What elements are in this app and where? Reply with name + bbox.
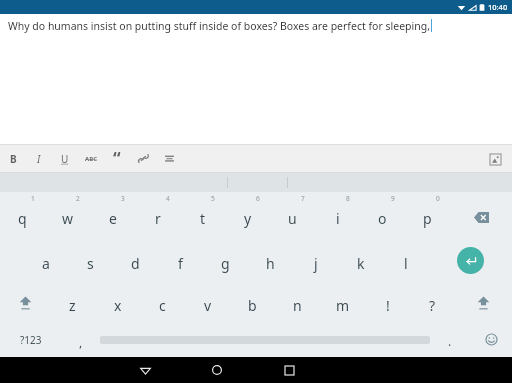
button[interactable]: Italic: [26, 144, 52, 173]
staticText: v: [204, 296, 212, 315]
staticText: “: [113, 147, 121, 170]
staticText: 0: [436, 194, 440, 203]
button[interactable]: Shift: [0, 282, 50, 322]
staticText: ?123: [20, 333, 42, 347]
button[interactable]: Home: [200, 357, 234, 383]
button[interactable]: d: [113, 238, 158, 282]
button[interactable]: b: [230, 282, 275, 322]
button[interactable]: h: [248, 238, 293, 282]
staticText: 10:40: [488, 2, 508, 12]
button[interactable]: s: [68, 238, 113, 282]
button[interactable]: Shift: [455, 282, 512, 322]
button[interactable]: Space: [100, 322, 430, 357]
button[interactable]: Enter: [428, 238, 512, 282]
button[interactable]: v: [185, 282, 230, 322]
button[interactable]: c: [140, 282, 185, 322]
staticText: m: [336, 296, 350, 315]
staticText: e: [109, 209, 117, 228]
button[interactable]: .: [430, 322, 470, 357]
staticText: Why do humans insist on putting stuff in…: [8, 19, 430, 33]
staticText: y: [244, 209, 252, 228]
button[interactable]: z: [50, 282, 95, 322]
button[interactable]: 9: [360, 192, 405, 238]
staticText: 5: [211, 194, 215, 203]
button[interactable]: 2: [45, 192, 90, 238]
staticText: s: [87, 254, 94, 273]
staticText: n: [293, 296, 302, 315]
button[interactable]: 8: [315, 192, 360, 238]
staticText: z: [69, 296, 76, 315]
staticText: 9: [391, 194, 395, 203]
staticText: p: [423, 209, 432, 228]
staticText: 1: [31, 194, 35, 203]
staticText: h: [266, 254, 275, 273]
button[interactable]: Strikethrough: [78, 144, 104, 173]
staticText: u: [288, 209, 297, 228]
button[interactable]: 3: [90, 192, 135, 238]
staticText: d: [131, 254, 140, 273]
staticText: l: [404, 254, 408, 273]
staticText: j: [314, 254, 318, 273]
staticText: U: [61, 152, 69, 166]
button[interactable]: m: [320, 282, 365, 322]
button[interactable]: Recents: [272, 357, 306, 383]
staticText: a: [42, 254, 50, 273]
button[interactable]: Insert media: [478, 152, 512, 166]
button[interactable]: !: [365, 282, 410, 322]
staticText: 8: [346, 194, 350, 203]
button[interactable]: ?123: [0, 322, 62, 357]
button[interactable]: Emoji: [470, 322, 512, 357]
button[interactable]: 6: [225, 192, 270, 238]
staticText: 2: [76, 194, 80, 203]
button[interactable]: Underline: [52, 144, 78, 173]
button[interactable]: 1: [0, 192, 45, 238]
staticText: t: [200, 209, 206, 228]
button[interactable]: Bold: [0, 144, 26, 173]
button[interactable]: j: [293, 238, 338, 282]
staticText: i: [336, 209, 340, 228]
staticText: r: [155, 209, 161, 228]
button[interactable]: 5: [180, 192, 225, 238]
button[interactable]: Divider: [156, 144, 182, 173]
button[interactable]: Backspace: [450, 192, 512, 238]
staticText: ,: [79, 334, 83, 350]
staticText: g: [221, 254, 230, 273]
button[interactable]: Link: [130, 144, 156, 173]
staticText: c: [159, 296, 166, 315]
button[interactable]: Back: [128, 357, 162, 383]
staticText: ?: [429, 296, 436, 315]
staticText: I: [37, 152, 41, 166]
button[interactable]: Quote: [104, 144, 130, 173]
staticText: o: [378, 209, 387, 228]
staticText: b: [248, 296, 257, 315]
button[interactable]: 0: [405, 192, 450, 238]
button[interactable]: f: [158, 238, 203, 282]
staticText: k: [357, 254, 365, 273]
button[interactable]: n: [275, 282, 320, 322]
staticText: ABC: [85, 155, 97, 163]
button[interactable]: 4: [135, 192, 180, 238]
button[interactable]: x: [95, 282, 140, 322]
staticText: f: [178, 254, 183, 273]
staticText: 7: [301, 194, 305, 203]
button[interactable]: g: [203, 238, 248, 282]
button[interactable]: a: [23, 238, 68, 282]
staticText: 6: [256, 194, 260, 203]
staticText: 3: [121, 194, 125, 203]
button[interactable]: 7: [270, 192, 315, 238]
staticText: .: [448, 333, 452, 349]
button[interactable]: l: [383, 238, 428, 282]
button[interactable]: ?: [410, 282, 455, 322]
staticText: w: [62, 209, 74, 228]
staticText: 4: [166, 194, 170, 203]
button[interactable]: ,: [62, 322, 100, 357]
staticText: B: [10, 152, 17, 166]
staticText: !: [386, 296, 390, 315]
staticText: x: [114, 296, 122, 315]
button[interactable]: k: [338, 238, 383, 282]
staticText: q: [18, 209, 27, 228]
